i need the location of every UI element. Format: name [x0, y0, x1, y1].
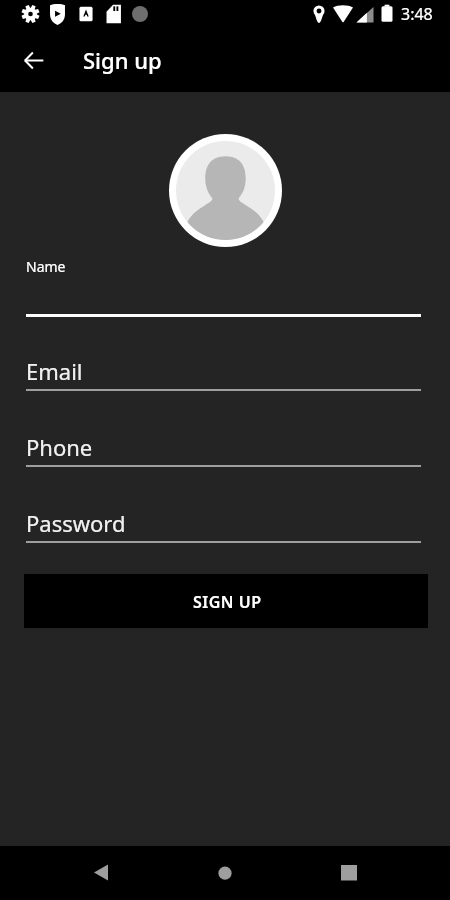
staticText: Email: [26, 356, 83, 386]
button[interactable]: Back: [71, 846, 131, 900]
button[interactable]: Email: [26, 352, 421, 391]
button[interactable]: Password: [26, 504, 421, 543]
staticText: 3:48: [401, 3, 433, 25]
staticText: Name: [26, 257, 66, 276]
staticText: Password: [26, 508, 126, 538]
button[interactable]: Name: [26, 253, 421, 317]
staticText: Sign up: [83, 45, 162, 75]
staticText: SIGN UP: [193, 591, 262, 613]
staticText: Phone: [26, 432, 93, 462]
button[interactable]: SIGN UP: [24, 574, 428, 628]
button[interactable]: Phone: [26, 428, 421, 467]
button[interactable]: Back: [13, 40, 53, 80]
button[interactable]: Home: [195, 846, 255, 900]
button[interactable]: Recent apps: [319, 846, 379, 900]
